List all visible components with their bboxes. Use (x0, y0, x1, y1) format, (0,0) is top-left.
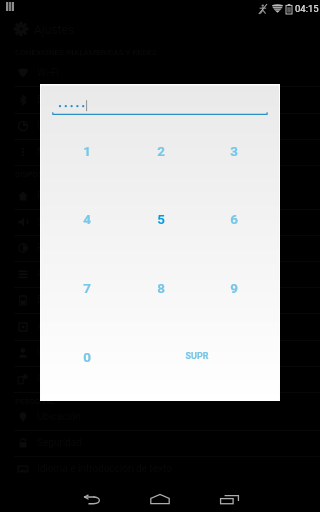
button[interactable]: SUPR (123, 322, 270, 391)
staticText: Opciones avanzadas (37, 373, 130, 385)
button[interactable]: 7 (50, 253, 124, 322)
button[interactable]: 4 (50, 185, 124, 253)
button[interactable]: Home (142, 486, 178, 512)
button[interactable]: 1 (50, 117, 124, 185)
staticText: Pantalla (37, 242, 74, 254)
staticText: 8 (157, 280, 165, 296)
button[interactable]: Recent apps (211, 486, 247, 512)
staticText: Batería (37, 294, 69, 306)
button[interactable]: 6 (197, 185, 270, 253)
staticText: Aplicaciones (37, 321, 95, 333)
button[interactable]: 0 (50, 322, 123, 391)
staticText: Sonido (37, 216, 68, 228)
staticText: Bluetooth (37, 94, 80, 106)
staticText: Más… (37, 146, 64, 158)
staticText: 5 (157, 211, 165, 227)
staticText: PERSONAL (15, 397, 56, 406)
button[interactable]: 8 (124, 253, 197, 322)
staticText: Pantalla de inicio (37, 190, 113, 202)
staticText: 9 (230, 280, 238, 296)
staticText: SUPR (185, 351, 209, 362)
staticText: 2 (157, 143, 165, 159)
button[interactable]: 2 (124, 117, 197, 185)
staticText: DISPOSITIVO (15, 170, 63, 179)
staticText: Almacenamiento (37, 268, 113, 280)
staticText: 3 (230, 143, 238, 159)
button[interactable]: Back (74, 486, 110, 512)
button[interactable]: 9 (197, 253, 270, 322)
button[interactable]: 5 (124, 185, 197, 253)
staticText: 6 (230, 211, 238, 227)
staticText: Usuarios (37, 347, 77, 359)
staticText: 04:15 (295, 3, 319, 14)
staticText: 1 (83, 143, 91, 159)
staticText: 0 (83, 349, 91, 365)
staticText: 4 (83, 211, 91, 227)
button[interactable]: 3 (197, 117, 270, 185)
staticText: 7 (83, 280, 91, 296)
staticText: Uso de datos (37, 120, 96, 132)
